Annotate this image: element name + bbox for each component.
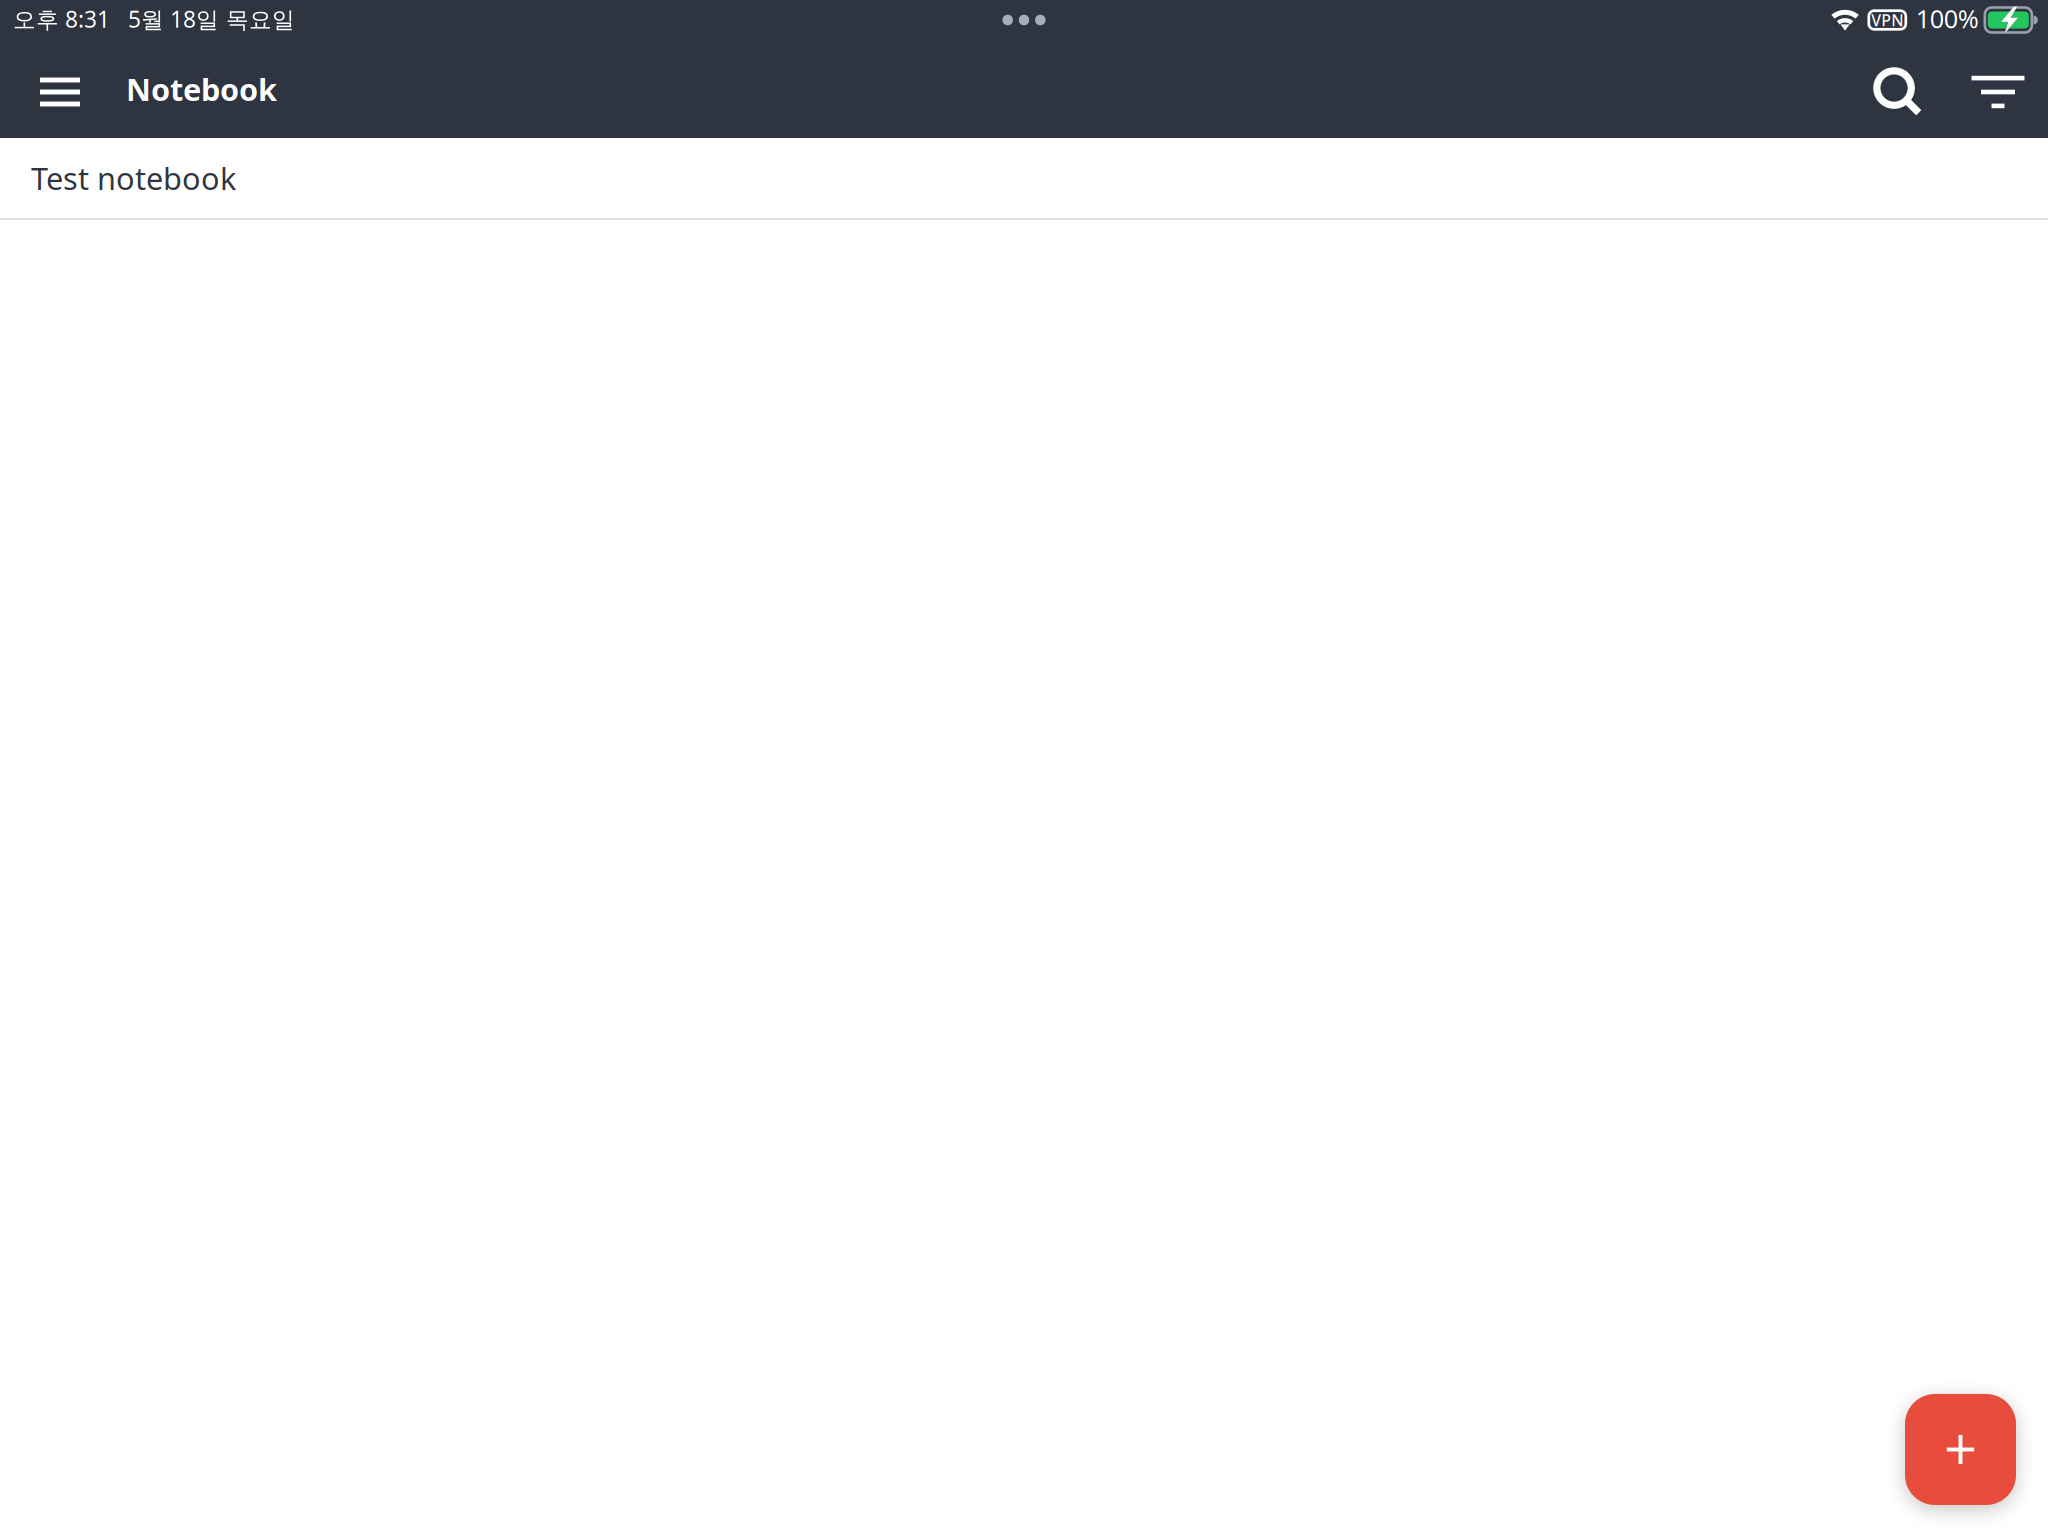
staticText: Notebook bbox=[126, 69, 277, 109]
button[interactable]: Menu bbox=[0, 46, 120, 138]
staticText: Test notebook bbox=[31, 158, 236, 198]
staticText: 오후 8:31 5월 18일 목요일 bbox=[13, 4, 295, 34]
button[interactable]: Search bbox=[1848, 46, 1948, 138]
button[interactable]: Sort and filter bbox=[1948, 46, 2048, 138]
button[interactable]: New note bbox=[1905, 1394, 2016, 1505]
staticText: 100% bbox=[1916, 2, 1979, 35]
staticText: VPN bbox=[1871, 9, 1903, 31]
button[interactable]: Test notebook bbox=[0, 138, 2048, 218]
